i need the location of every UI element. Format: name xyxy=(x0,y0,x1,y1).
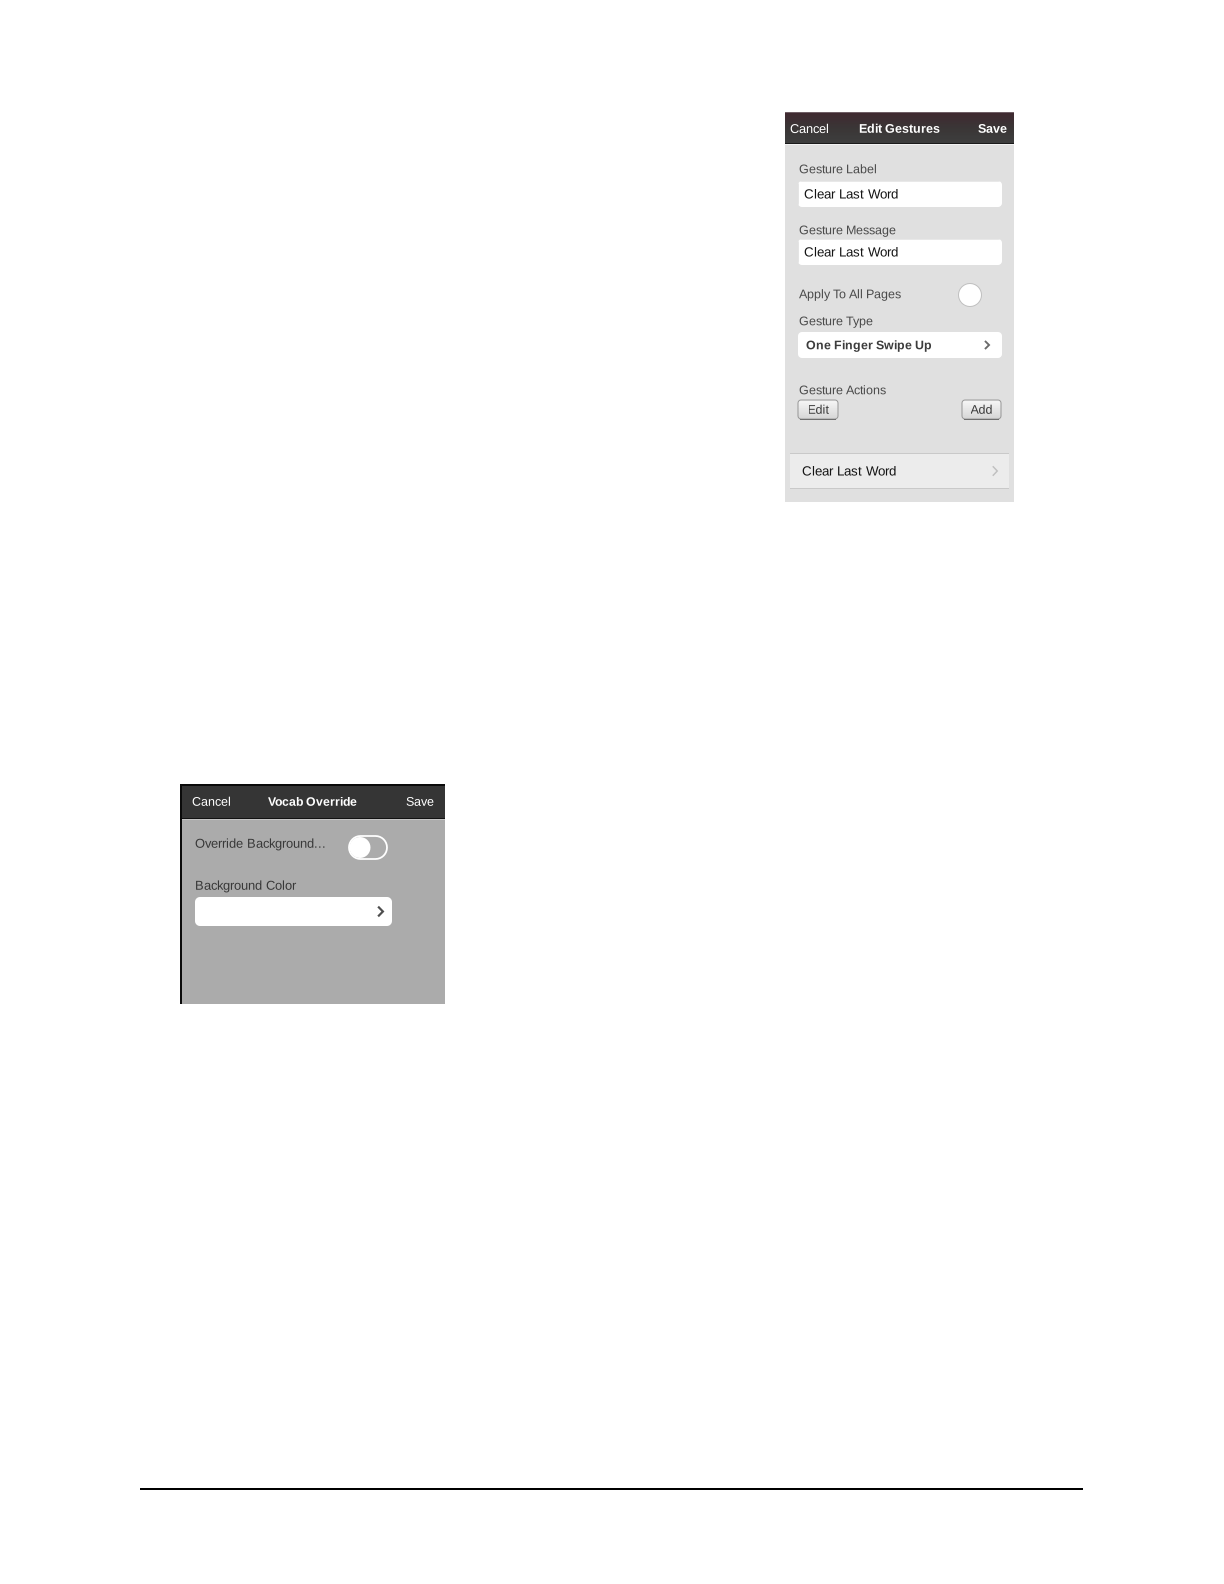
staticText: Gesture Label xyxy=(799,162,877,176)
button[interactable]: Background Color xyxy=(195,897,392,926)
staticText: Add xyxy=(970,402,992,416)
button[interactable]: Cancel xyxy=(180,784,246,819)
button[interactable]: Save xyxy=(382,784,445,819)
button[interactable]: Clear Last Word xyxy=(790,453,1009,489)
staticText: Override Background... xyxy=(195,836,326,850)
button[interactable]: Add xyxy=(962,400,1001,420)
staticText: Clear Last Word xyxy=(804,245,898,259)
staticText: Edit Gestures xyxy=(859,121,940,135)
staticText: Clear Last Word xyxy=(802,464,896,478)
button[interactable]: Clear Last Word xyxy=(798,181,1002,207)
staticText: Edit xyxy=(807,402,828,416)
button[interactable]: Clear Last Word xyxy=(798,239,1002,265)
button[interactable]: Apply To All Pages xyxy=(957,282,983,308)
staticText: Cancel xyxy=(192,794,231,808)
staticText: Save xyxy=(406,794,434,808)
button[interactable]: Cancel xyxy=(785,113,842,144)
staticText: Apply To All Pages xyxy=(799,287,901,301)
staticText: One Finger Swipe Up xyxy=(806,338,932,352)
staticText: Gesture Type xyxy=(799,314,873,328)
staticText: Save xyxy=(978,121,1007,135)
staticText: Cancel xyxy=(790,121,829,136)
button[interactable]: Edit xyxy=(798,400,838,420)
staticText: Gesture Actions xyxy=(799,383,886,397)
button[interactable]: One Finger Swipe Up xyxy=(798,332,1002,358)
button[interactable]: Save xyxy=(959,113,1013,144)
button[interactable]: Override Background xyxy=(349,836,387,859)
staticText: Vocab Override xyxy=(268,795,357,808)
staticText: Gesture Message xyxy=(799,223,896,237)
staticText: Clear Last Word xyxy=(804,187,898,201)
staticText: Background Color xyxy=(195,878,296,892)
